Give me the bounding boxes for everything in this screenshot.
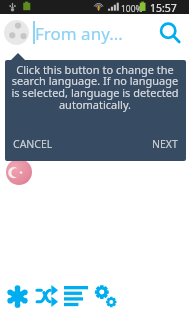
- button[interactable]: CANCEL: [10, 134, 56, 154]
- staticText: NEXT: [152, 137, 178, 151]
- button[interactable]: Select language: [4, 20, 29, 45]
- button[interactable]: History: [61, 281, 91, 311]
- button[interactable]: Clear text: [2, 281, 32, 311]
- staticText: From any...: [35, 22, 123, 45]
- button[interactable]: Swap languages: [32, 281, 62, 311]
- staticText: 15:57: [150, 1, 177, 15]
- button[interactable]: Settings: [91, 281, 121, 311]
- button[interactable]: NEXT: [149, 134, 181, 154]
- button[interactable]: Turkish: [6, 159, 32, 185]
- button[interactable]: Search: [153, 16, 187, 50]
- staticText: Click this button to change the search l…: [10, 62, 180, 112]
- staticText: 100%: [121, 3, 143, 15]
- staticText: CANCEL: [13, 137, 53, 151]
